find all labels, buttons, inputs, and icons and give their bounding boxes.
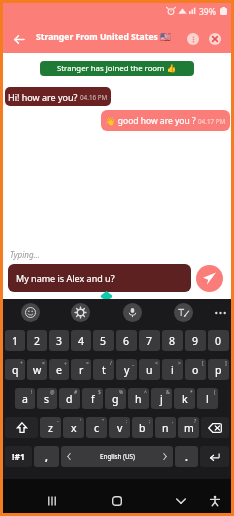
staticText: _: [132, 360, 135, 367]
button[interactable]: y: [116, 359, 137, 380]
button[interactable]: Accessibility: [202, 488, 228, 514]
button[interactable]: Hi! how are you?: [5, 87, 111, 106]
button[interactable]: 3: [49, 330, 69, 351]
button[interactable]: 9: [185, 330, 206, 351]
staticText: t: [102, 363, 106, 377]
button[interactable]: 7: [139, 330, 160, 351]
staticText: [: [202, 360, 204, 367]
button[interactable]: .: [175, 446, 198, 467]
button[interactable]: Send: [196, 265, 223, 292]
staticText: ": [102, 418, 105, 425]
button[interactable]: u: [139, 359, 160, 380]
button[interactable]: 6: [116, 330, 137, 351]
staticText: d: [66, 392, 73, 406]
button[interactable]: Home: [104, 488, 130, 514]
button[interactable]: z: [40, 417, 61, 438]
staticText: Typing...: [10, 249, 40, 260]
button[interactable]: k: [174, 388, 195, 409]
staticText: h: [135, 392, 142, 406]
staticText: <: [155, 360, 158, 367]
staticText: ,: [45, 450, 48, 464]
staticText: x: [71, 421, 77, 435]
staticText: 4: [78, 334, 85, 348]
staticText: 9: [192, 334, 199, 348]
button[interactable]: Back: [11, 31, 27, 47]
button[interactable]: b: [132, 417, 153, 438]
button[interactable]: c: [86, 417, 107, 438]
button[interactable]: v: [109, 417, 130, 438]
button[interactable]: t: [93, 359, 114, 380]
staticText: ': [80, 418, 82, 425]
staticText: c: [94, 421, 100, 435]
button[interactable]: p: [208, 359, 229, 380]
staticText: Stranger has joined the room 👍: [57, 63, 177, 74]
staticText: ,: [172, 418, 174, 425]
button[interactable]: 5: [93, 330, 114, 351]
button[interactable]: w: [27, 359, 47, 380]
button[interactable]: Hide keyboard: [168, 488, 194, 514]
button[interactable]: r: [71, 359, 91, 380]
button[interactable]: English (US): [61, 446, 173, 467]
button[interactable]: Recents: [39, 488, 65, 514]
button[interactable]: i: [162, 359, 183, 380]
button[interactable]: 1: [5, 330, 25, 351]
button[interactable]: x: [63, 417, 84, 438]
staticText: =: [86, 360, 89, 367]
staticText: (: [214, 389, 216, 396]
button[interactable]: d: [59, 388, 80, 409]
staticText: 0: [215, 334, 222, 348]
button[interactable]: Shift: [5, 417, 38, 438]
staticText: 04.17 PM: [198, 117, 226, 126]
button[interactable]: Close chat: [209, 33, 221, 45]
button[interactable]: Backspace: [201, 417, 229, 438]
button[interactable]: My name is Alex and u?: [8, 264, 191, 292]
button[interactable]: m: [178, 417, 199, 438]
button[interactable]: 4: [71, 330, 91, 351]
button[interactable]: More options: [187, 33, 199, 45]
staticText: @: [50, 389, 55, 396]
staticText: n: [162, 421, 169, 435]
button[interactable]: 0: [208, 330, 229, 351]
staticText: e: [56, 363, 62, 377]
button[interactable]: g: [105, 388, 126, 409]
staticText: w: [33, 363, 42, 377]
button[interactable]: !#1: [5, 446, 32, 467]
staticText: ×: [42, 360, 45, 367]
button[interactable]: More keyboard options: [211, 303, 230, 322]
staticText: %: [119, 389, 124, 396]
button[interactable]: 2: [27, 330, 47, 351]
button[interactable]: Voice input: [123, 303, 142, 322]
button[interactable]: q: [5, 359, 25, 380]
staticText: 👋 good how are you ?: [105, 115, 196, 127]
button[interactable]: a: [15, 388, 35, 409]
button[interactable]: Stranger has joined the room 👍: [40, 61, 194, 76]
staticText: *: [190, 389, 193, 396]
button[interactable]: 👋 good how are you ?: [101, 110, 230, 131]
button[interactable]: e: [49, 359, 69, 380]
button[interactable]: Enter: [200, 446, 229, 467]
button[interactable]: Keyboard settings: [71, 303, 90, 322]
button[interactable]: n: [155, 417, 176, 438]
button[interactable]: f: [82, 388, 103, 409]
button[interactable]: Emoji: [21, 303, 40, 322]
staticText: $: [98, 389, 101, 396]
button[interactable]: 8: [162, 330, 183, 351]
button[interactable]: o: [185, 359, 206, 380]
button[interactable]: l: [197, 388, 218, 409]
staticText: r: [79, 363, 84, 377]
staticText: 04.16 PM: [80, 93, 108, 102]
staticText: a: [22, 392, 28, 406]
button[interactable]: ,: [34, 446, 59, 467]
staticText: k: [182, 392, 188, 406]
staticText: /: [110, 360, 112, 367]
staticText: ]: [225, 360, 227, 367]
button[interactable]: Handwriting: [174, 303, 193, 322]
button[interactable]: s: [37, 388, 57, 409]
staticText: p: [215, 363, 222, 377]
staticText: -: [57, 418, 59, 425]
staticText: 5: [100, 334, 107, 348]
staticText: o: [192, 363, 199, 377]
staticText: u: [146, 363, 153, 377]
button[interactable]: h: [128, 388, 149, 409]
button[interactable]: j: [151, 388, 172, 409]
